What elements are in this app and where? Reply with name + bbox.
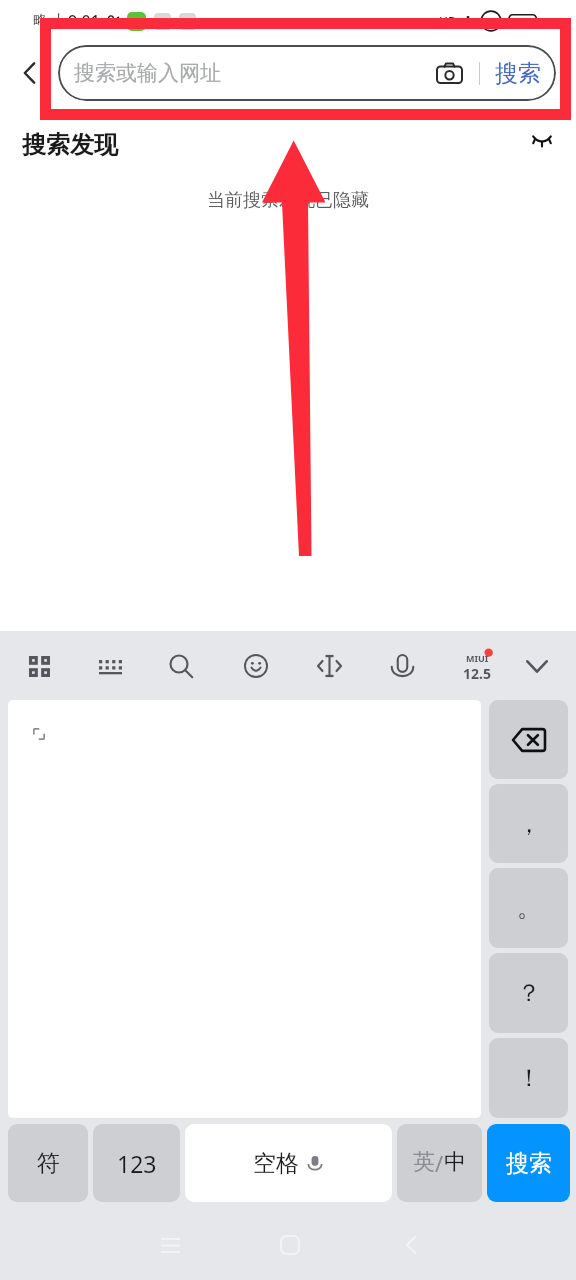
staticText: ！ (517, 1063, 541, 1093)
button[interactable]: Question mark (489, 953, 568, 1033)
staticText: 搜索发现 (22, 130, 118, 160)
staticText: 搜索 (506, 1149, 552, 1178)
staticText: 123 (117, 1148, 157, 1179)
button[interactable]: 英 (397, 1124, 482, 1202)
staticText: 符 (37, 1149, 60, 1178)
button[interactable]: Move cursor (307, 644, 351, 688)
staticText: 当前搜索发现已隐藏 (207, 189, 369, 212)
staticText: 搜索或输入网址 (74, 60, 221, 86)
staticText: HD (439, 13, 457, 29)
staticText: 12.5 (463, 664, 491, 683)
staticText: ， (517, 809, 541, 839)
staticText: 中 (444, 1148, 466, 1176)
staticText: / (435, 1148, 444, 1178)
button[interactable]: 空格 (185, 1124, 392, 1202)
button[interactable]: Comma (489, 784, 568, 863)
staticText: 上 (52, 12, 66, 30)
staticText: 。 (517, 893, 541, 923)
button[interactable]: Search (159, 644, 203, 688)
button[interactable]: Emoji (234, 644, 278, 688)
staticText: 空格 (253, 1149, 299, 1178)
staticText: 略 (33, 12, 47, 30)
button[interactable]: Back (12, 55, 48, 91)
button[interactable]: 123 (93, 1124, 180, 1202)
button[interactable]: Voice input (380, 644, 424, 688)
staticText: 搜索 (495, 59, 541, 88)
button[interactable]: Period (489, 868, 568, 948)
staticText: MIUI (466, 652, 489, 664)
button[interactable]: Input method settings (455, 644, 499, 688)
staticText: ？ (517, 978, 541, 1008)
button[interactable]: 搜索 (487, 1124, 570, 1202)
button[interactable]: 搜索或输入网址 (58, 45, 556, 101)
button[interactable]: 符 (8, 1124, 88, 1202)
button[interactable]: Hide keyboard (515, 644, 559, 688)
staticText: 9:01 (68, 10, 100, 32)
button[interactable]: Backspace (489, 700, 568, 779)
button[interactable]: Apps (17, 644, 61, 688)
button[interactable]: Hide search discovery (524, 122, 560, 158)
button[interactable]: Camera search (431, 55, 467, 91)
button[interactable]: Exclamation mark (489, 1038, 568, 1118)
staticText: 英 (413, 1148, 435, 1176)
button[interactable]: Keyboard layout (88, 644, 132, 688)
